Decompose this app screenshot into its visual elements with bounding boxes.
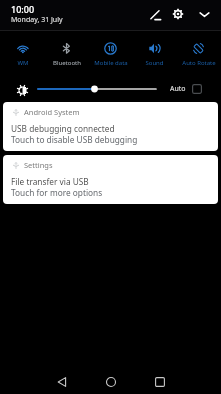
- button[interactable]: Settings: [3, 155, 218, 204]
- staticText: Sound: [145, 59, 164, 67]
- staticText: Bluetooth: [53, 59, 81, 67]
- staticText: 10:00: [11, 3, 35, 15]
- staticText: Android System: [24, 107, 80, 117]
- staticText: WM: [17, 59, 29, 67]
- staticText: USB debugging connected: [11, 123, 115, 134]
- staticText: Touch to disable USB debugging: [11, 134, 138, 145]
- button[interactable]: Edit quick settings: [147, 6, 163, 22]
- staticText: Mobile data: [94, 59, 128, 67]
- staticText: Touch for more options: [11, 187, 103, 198]
- staticText: Auto Rotate: [182, 59, 216, 67]
- button[interactable]: Auto: [168, 82, 204, 96]
- button[interactable]: Brightness: [14, 82, 31, 99]
- staticText: Settings: [24, 160, 53, 170]
- button[interactable]: Android System: [3, 102, 218, 151]
- button[interactable]: Auto Rotate: [177, 31, 220, 71]
- button[interactable]: Brightness slider: [34, 82, 160, 96]
- button[interactable]: Settings: [170, 6, 186, 22]
- button[interactable]: Mobile data: [89, 31, 132, 71]
- button[interactable]: Sound: [133, 31, 176, 71]
- button[interactable]: Back: [47, 367, 76, 394]
- staticText: Monday, 31 July: [11, 15, 63, 25]
- staticText: Auto: [170, 84, 186, 94]
- button[interactable]: Home: [96, 367, 125, 394]
- button[interactable]: Expand: [196, 6, 212, 22]
- button[interactable]: Bluetooth: [45, 31, 88, 71]
- button[interactable]: Recent apps: [145, 367, 174, 394]
- button[interactable]: WM: [1, 31, 44, 71]
- staticText: File transfer via USB: [11, 176, 89, 187]
